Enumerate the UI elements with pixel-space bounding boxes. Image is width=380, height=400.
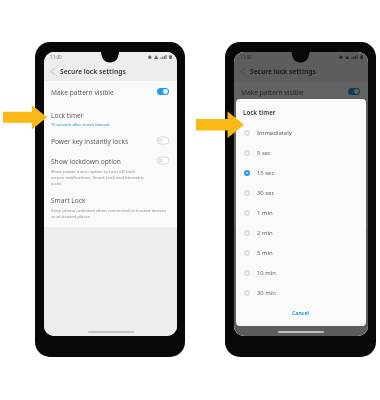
staticText: Show power menu option to turn off Lock … bbox=[241, 168, 335, 186]
staticText: 30 sec bbox=[257, 189, 275, 197]
staticText: Lock timer bbox=[243, 108, 276, 116]
staticText: Show lockdown option bbox=[51, 157, 121, 166]
button[interactable]: Power key instantly locks bbox=[234, 132, 368, 152]
staticText: 15 sec bbox=[257, 169, 275, 177]
button[interactable]: Toggle bbox=[157, 157, 169, 164]
staticText: Power key instantly locks bbox=[51, 137, 129, 146]
staticText: Secure lock settings bbox=[60, 67, 126, 76]
button[interactable]: Toggle bbox=[157, 88, 169, 95]
button[interactable]: Smart Lock bbox=[44, 190, 177, 221]
staticText: 5 min bbox=[257, 249, 273, 257]
staticText: Keep phone unlocked when connected to tr… bbox=[51, 207, 167, 219]
staticText: Make pattern visible bbox=[51, 88, 114, 97]
staticText: 15 seconds after screen timeout bbox=[51, 122, 110, 127]
button[interactable]: Toggle bbox=[348, 88, 360, 95]
staticText: Lock timer bbox=[51, 111, 84, 120]
button[interactable]: 10 min bbox=[236, 263, 366, 283]
staticText: 2 min bbox=[257, 229, 273, 237]
staticText: 11:00 bbox=[240, 54, 252, 60]
staticText: Keep phone unlocked when connected to tr… bbox=[241, 207, 357, 219]
staticText: 30 min bbox=[257, 289, 276, 297]
button[interactable]: 15 sec bbox=[236, 163, 366, 183]
staticText: 5 sec bbox=[257, 149, 271, 157]
button[interactable]: Power key instantly locks bbox=[44, 132, 177, 152]
button[interactable]: Immediately bbox=[236, 123, 366, 143]
button[interactable]: Cancel bbox=[280, 306, 322, 319]
staticText: Make pattern visible bbox=[241, 88, 304, 97]
button[interactable]: Show lockdown option bbox=[234, 152, 368, 190]
button[interactable]: Lock timer bbox=[44, 105, 177, 132]
staticText: Immediately bbox=[257, 129, 292, 137]
staticText: 11:00 bbox=[50, 54, 62, 60]
staticText: Lock timer bbox=[241, 111, 274, 120]
staticText: 10 min bbox=[257, 269, 276, 277]
button[interactable]: Make pattern visible bbox=[234, 81, 368, 105]
button[interactable]: Make pattern visible bbox=[44, 81, 177, 105]
button[interactable]: 5 sec bbox=[236, 143, 366, 163]
button[interactable]: Show lockdown option bbox=[44, 152, 177, 190]
button[interactable]: 5 min bbox=[236, 243, 366, 263]
staticText: Smart Lock bbox=[51, 196, 86, 205]
staticText: Cancel bbox=[292, 309, 310, 316]
button[interactable]: 2 min bbox=[236, 223, 366, 243]
staticText: 15 seconds after screen timeout bbox=[241, 122, 300, 127]
button[interactable]: 1 min bbox=[236, 203, 366, 223]
staticText: 1 min bbox=[257, 209, 273, 217]
button[interactable]: 30 sec bbox=[236, 183, 366, 203]
button[interactable]: 30 min bbox=[236, 283, 366, 303]
staticText: Secure lock settings bbox=[250, 67, 316, 76]
staticText: Show power menu option to turn off Lock … bbox=[51, 168, 145, 186]
button[interactable]: Back bbox=[238, 66, 249, 77]
button[interactable]: Smart Lock bbox=[234, 190, 368, 221]
button[interactable]: Toggle bbox=[157, 137, 169, 144]
button[interactable]: Lock timer bbox=[234, 105, 368, 132]
button[interactable]: Back bbox=[48, 66, 59, 77]
